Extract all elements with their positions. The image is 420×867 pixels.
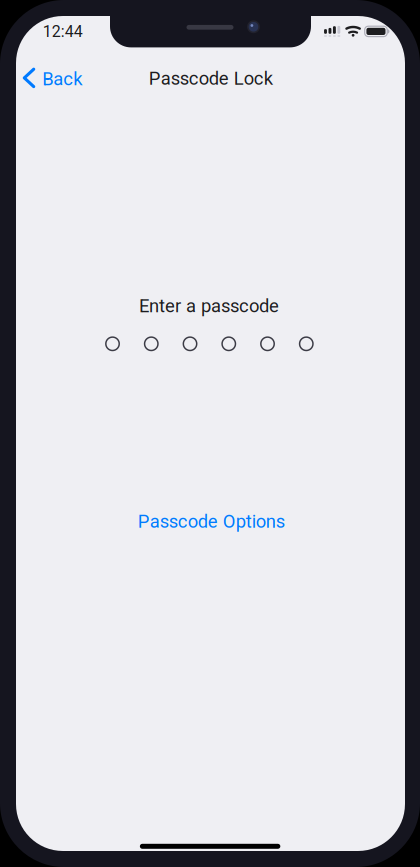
- button[interactable]: Passcode Options: [124, 502, 299, 541]
- staticText: 12:44: [43, 22, 83, 41]
- staticText: Enter a passcode: [139, 295, 279, 317]
- staticText: Back: [42, 68, 82, 90]
- button[interactable]: Back: [17, 59, 88, 99]
- staticText: Passcode Options: [138, 511, 285, 532]
- staticText: Passcode Lock: [149, 68, 273, 89]
